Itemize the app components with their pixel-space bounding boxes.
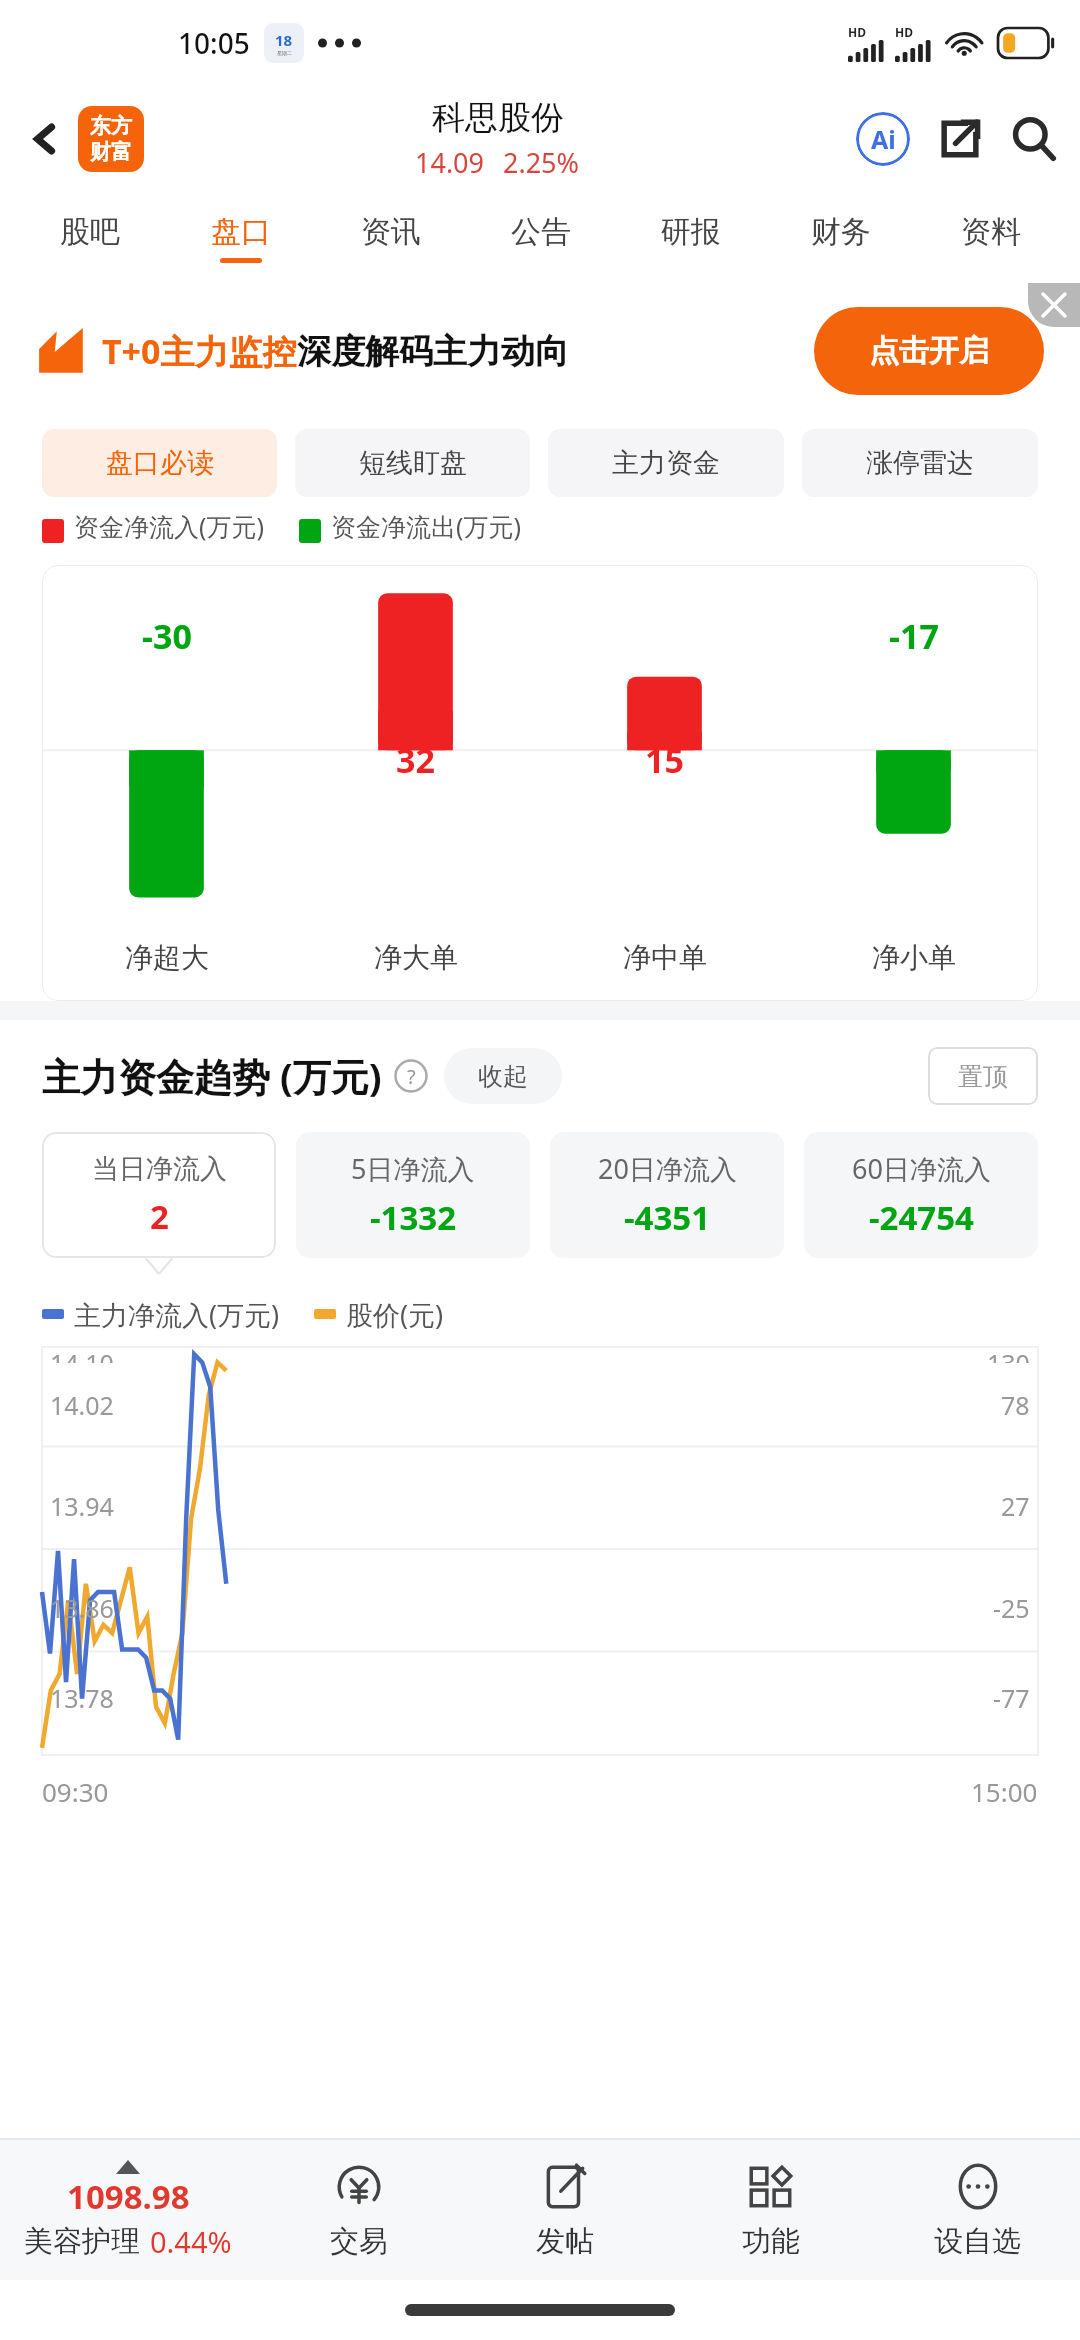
staticText: 股吧 bbox=[60, 213, 120, 251]
staticText: 资金净流出(万元) bbox=[331, 509, 522, 543]
staticText: 置顶 bbox=[958, 1061, 1008, 1092]
staticText: 60日净流入 bbox=[852, 1150, 991, 1187]
button[interactable]: 交易 bbox=[256, 2140, 462, 2280]
staticText: 财富 bbox=[90, 139, 132, 165]
button[interactable]: 资料 bbox=[916, 193, 1066, 283]
staticText: 主力资金趋势 (万元) bbox=[42, 1050, 382, 1102]
staticText: 2 bbox=[150, 1194, 169, 1239]
staticText: 东方 bbox=[90, 113, 132, 139]
button[interactable]: 东方财富 bbox=[78, 106, 144, 172]
staticText: T+0主力监控 bbox=[102, 328, 297, 374]
staticText: 研报 bbox=[661, 213, 721, 251]
staticText: 27 bbox=[1001, 1489, 1030, 1523]
staticText: 功能 bbox=[742, 2223, 800, 2260]
staticText: 主力净流入(万元) bbox=[74, 1296, 280, 1333]
staticText: 涨停雷达 bbox=[866, 446, 974, 480]
staticText: 深度解码主力动向 bbox=[297, 330, 569, 373]
staticText: 2.25% bbox=[503, 144, 580, 181]
button[interactable]: 主力资金 bbox=[548, 429, 784, 497]
staticText: HD bbox=[848, 24, 866, 40]
staticText: 收起 bbox=[478, 1061, 528, 1092]
button[interactable]: Share bbox=[932, 111, 988, 167]
staticText: 设自选 bbox=[934, 2223, 1021, 2260]
button[interactable]: 置顶 bbox=[928, 1047, 1038, 1105]
button[interactable]: 资讯 bbox=[316, 193, 466, 283]
button[interactable]: 涨停雷达 bbox=[802, 429, 1038, 497]
staticText: 0.44% bbox=[150, 2222, 232, 2261]
button[interactable]: 研报 bbox=[616, 193, 766, 283]
staticText: 资金净流入(万元) bbox=[74, 509, 265, 543]
button[interactable]: 点击开启 bbox=[814, 307, 1044, 395]
staticText: 交易 bbox=[330, 2223, 388, 2260]
button[interactable]: 60日净流入 bbox=[804, 1132, 1038, 1258]
staticText: 78 bbox=[1001, 1388, 1030, 1422]
staticText: 主力资金 bbox=[612, 446, 720, 480]
staticText: 财务 bbox=[811, 213, 871, 251]
staticText: 净小单 bbox=[872, 940, 956, 975]
staticText: -24754 bbox=[869, 1195, 974, 1240]
staticText: 14.10 bbox=[50, 1346, 114, 1363]
staticText: 盘口必读 bbox=[106, 446, 214, 480]
staticText: 15 bbox=[645, 737, 684, 783]
staticText: 资讯 bbox=[361, 213, 421, 251]
button[interactable]: 财务 bbox=[766, 193, 916, 283]
staticText: 股价(元) bbox=[346, 1296, 444, 1333]
button[interactable]: Close ad bbox=[1028, 283, 1080, 327]
button[interactable]: 功能 bbox=[668, 2140, 874, 2280]
staticText: 5日净流入 bbox=[351, 1150, 475, 1187]
button[interactable]: 盘口 bbox=[165, 193, 316, 283]
staticText: Ai bbox=[871, 122, 896, 156]
staticText: 13.86 bbox=[50, 1591, 114, 1625]
staticText: -1332 bbox=[370, 1195, 457, 1240]
staticText: 美容护理 bbox=[24, 2223, 140, 2260]
button[interactable]: 20日净流入 bbox=[550, 1132, 784, 1258]
staticText: 1098.98 bbox=[67, 2174, 190, 2219]
staticText: 20日净流入 bbox=[598, 1150, 737, 1187]
button[interactable]: 当日净流入 bbox=[42, 1132, 276, 1258]
staticText: 科思股份 bbox=[432, 97, 564, 139]
staticText: 32 bbox=[396, 737, 435, 783]
button[interactable]: 5日净流入 bbox=[296, 1132, 530, 1258]
staticText: 资料 bbox=[961, 213, 1021, 251]
staticText: 净超大 bbox=[125, 940, 209, 975]
staticText: 公告 bbox=[511, 213, 571, 251]
staticText: 盘口 bbox=[211, 213, 271, 251]
staticText: -25 bbox=[993, 1591, 1030, 1625]
staticText: 14.09 bbox=[415, 144, 485, 181]
button[interactable]: Help bbox=[392, 1057, 430, 1095]
staticText: 10:05 bbox=[178, 24, 250, 62]
staticText: 点击开启 bbox=[869, 332, 989, 370]
button[interactable]: AI assistant bbox=[852, 108, 914, 170]
button[interactable]: Search bbox=[1006, 111, 1062, 167]
button[interactable]: 股吧 bbox=[14, 193, 165, 283]
button[interactable]: Back bbox=[18, 112, 72, 166]
button[interactable]: 盘口必读 bbox=[42, 429, 277, 497]
staticText: 14.02 bbox=[50, 1388, 114, 1422]
staticText: 18 bbox=[275, 30, 293, 50]
staticText: -30 bbox=[142, 613, 192, 659]
button[interactable]: 公告 bbox=[466, 193, 616, 283]
staticText: ? bbox=[407, 1063, 416, 1090]
button[interactable]: 收起 bbox=[444, 1048, 562, 1104]
staticText: -4351 bbox=[624, 1195, 711, 1240]
staticText: HD bbox=[895, 24, 913, 40]
button[interactable]: 设自选 bbox=[874, 2140, 1080, 2280]
staticText: 13.78 bbox=[50, 1681, 114, 1715]
button[interactable]: 1098.98 bbox=[0, 2140, 256, 2280]
staticText: 发帖 bbox=[536, 2223, 594, 2260]
staticText: 星期二 bbox=[277, 50, 292, 56]
staticText: 当日净流入 bbox=[92, 1152, 227, 1186]
staticText: -77 bbox=[993, 1681, 1030, 1715]
staticText: 短线盯盘 bbox=[359, 446, 467, 480]
button[interactable]: 短线盯盘 bbox=[295, 429, 530, 497]
staticText: 09:30 bbox=[42, 1774, 109, 1809]
staticText: 13.94 bbox=[50, 1489, 114, 1523]
staticText: 净中单 bbox=[623, 940, 707, 975]
button[interactable]: 发帖 bbox=[462, 2140, 668, 2280]
staticText: -17 bbox=[889, 613, 939, 659]
staticText: 15:00 bbox=[971, 1774, 1038, 1809]
staticText: 130 bbox=[987, 1346, 1030, 1363]
staticText: 净大单 bbox=[374, 940, 458, 975]
